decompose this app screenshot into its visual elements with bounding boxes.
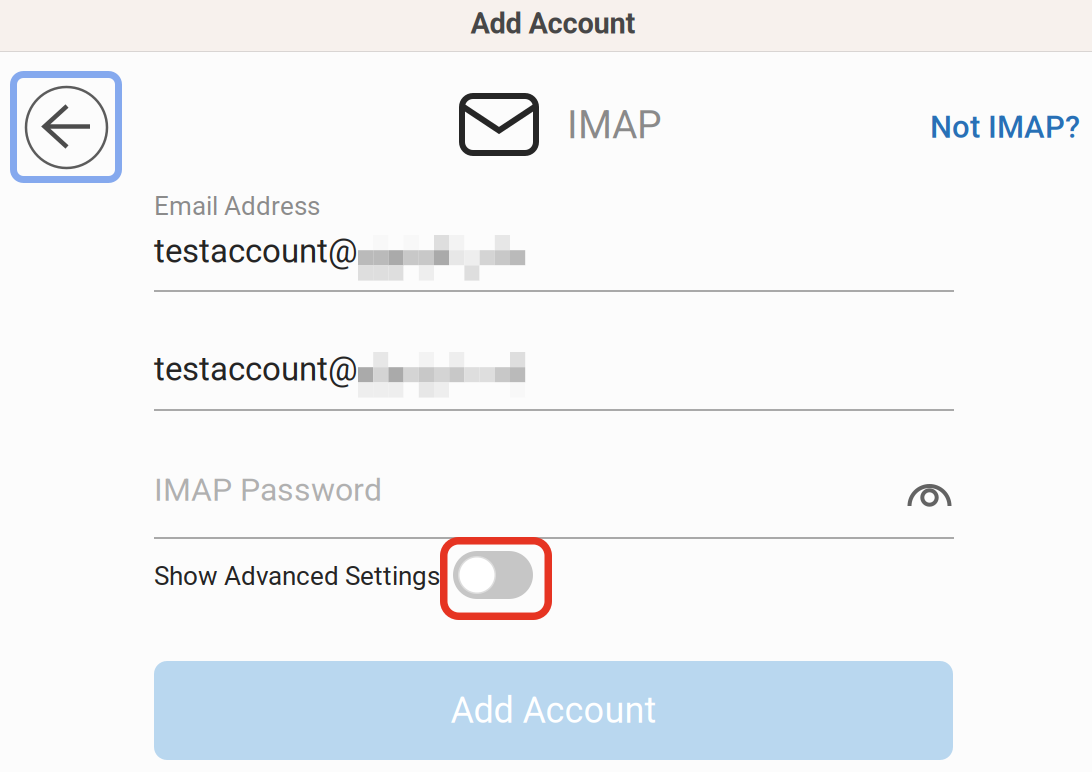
button[interactable]: Show Advanced Settings [453,551,533,599]
button[interactable]: Add Account [154,661,953,760]
staticText: Email Address [154,191,320,221]
staticText: Show Advanced Settings [154,561,440,591]
staticText: testaccount@ [154,232,358,271]
staticText: Add Account [470,6,635,40]
button[interactable]: Show password [894,468,964,530]
staticText: IMAP [567,102,662,148]
button[interactable]: Not IMAP? [930,109,1080,145]
staticText: testaccount@ [154,350,358,389]
button[interactable]: Email Address [154,231,954,292]
staticText: Add Account [450,689,656,732]
staticText: IMAP Password [154,471,382,508]
button[interactable]: Back [10,71,122,183]
button[interactable]: User Name [154,349,954,410]
button[interactable]: IMAP Password [154,468,884,530]
staticText: Not IMAP? [930,109,1080,145]
